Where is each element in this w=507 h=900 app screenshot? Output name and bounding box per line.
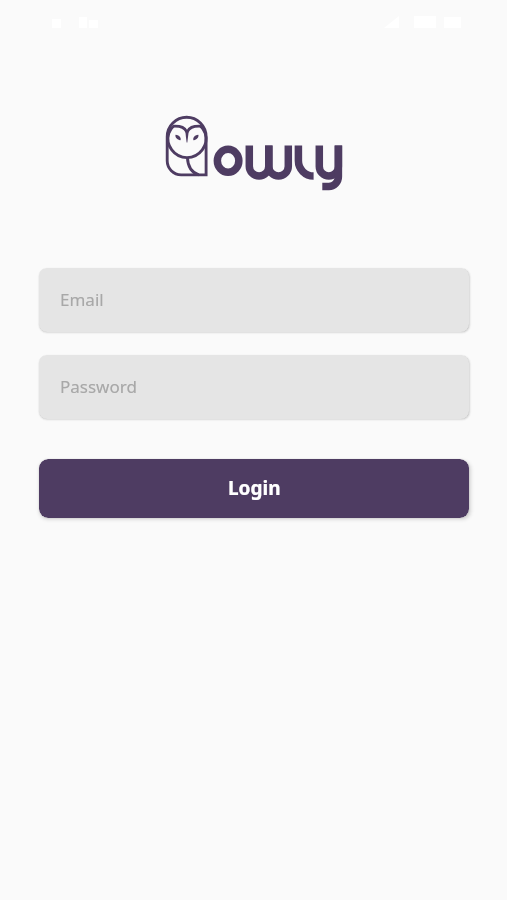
- staticText: Login: [228, 475, 281, 501]
- staticText: Email: [60, 288, 104, 311]
- button[interactable]: Login: [39, 459, 469, 518]
- staticText: Password: [60, 375, 137, 398]
- button[interactable]: Password: [39, 355, 469, 419]
- button[interactable]: Email: [39, 268, 469, 332]
